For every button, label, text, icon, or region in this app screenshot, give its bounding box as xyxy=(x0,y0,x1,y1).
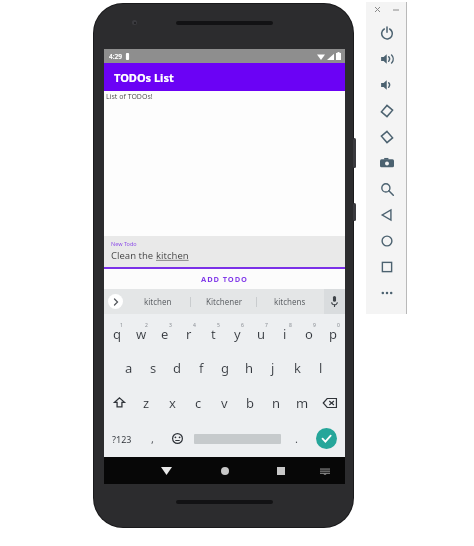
button[interactable]: Power xyxy=(367,20,407,46)
button[interactable]: Voice input xyxy=(324,289,345,314)
staticText: 9 xyxy=(313,322,316,329)
button[interactable]: s xyxy=(141,350,165,385)
staticText: 2 xyxy=(145,322,148,329)
staticText: j xyxy=(271,359,275,377)
button[interactable]: g xyxy=(213,350,237,385)
staticText: TODOs List xyxy=(114,70,174,85)
staticText: Kitchener xyxy=(206,296,242,307)
staticText: b xyxy=(246,394,254,412)
staticText: y xyxy=(234,325,241,343)
staticText: g xyxy=(221,359,229,377)
button[interactable]: Recent apps xyxy=(271,461,291,481)
button[interactable]: Done xyxy=(307,420,345,457)
button[interactable]: kitchen xyxy=(126,289,190,314)
button[interactable]: b xyxy=(237,385,263,420)
staticText: a xyxy=(125,359,133,377)
button[interactable]: 6 xyxy=(225,314,249,350)
button[interactable]: f xyxy=(189,350,213,385)
button[interactable]: Close xyxy=(372,4,383,15)
button[interactable]: v xyxy=(211,385,237,420)
button[interactable]: 1 xyxy=(104,314,129,350)
button[interactable]: x xyxy=(159,385,185,420)
button[interactable]: l xyxy=(309,350,333,385)
staticText: 4:29 xyxy=(109,52,122,61)
button[interactable]: Shift xyxy=(104,385,134,420)
button[interactable]: 2 xyxy=(129,314,153,350)
button[interactable]: New Todo xyxy=(104,236,345,269)
button[interactable]: Home xyxy=(215,461,235,481)
staticText: u xyxy=(257,325,266,343)
button[interactable]: Kitchener xyxy=(191,289,256,314)
staticText: kitchen xyxy=(156,249,189,262)
button[interactable]: 8 xyxy=(273,314,297,350)
staticText: h xyxy=(245,359,254,377)
staticText: s xyxy=(150,359,157,377)
button[interactable]: Emoji xyxy=(164,420,190,457)
staticText: 3 xyxy=(169,322,172,329)
staticText: . xyxy=(295,431,298,446)
staticText: k xyxy=(294,359,301,377)
staticText: e xyxy=(161,325,169,343)
staticText: l xyxy=(319,359,323,377)
staticText: p xyxy=(329,325,337,343)
button[interactable]: Home xyxy=(367,228,407,254)
staticText: ADD TODO xyxy=(201,274,248,284)
staticText: 8 xyxy=(289,322,292,329)
button[interactable]: j xyxy=(261,350,285,385)
button[interactable]: 5 xyxy=(201,314,225,350)
staticText: kitchen xyxy=(144,296,172,307)
button[interactable]: m xyxy=(289,385,315,420)
staticText: List of TODOs! xyxy=(106,92,153,102)
button[interactable]: Backspace xyxy=(315,385,345,420)
button[interactable]: h xyxy=(237,350,261,385)
button[interactable]: Space xyxy=(190,420,285,457)
button[interactable]: More xyxy=(367,280,407,306)
staticText: r xyxy=(186,325,192,343)
staticText: i xyxy=(283,325,287,343)
staticText: f xyxy=(199,359,204,377)
button[interactable]: kitchens xyxy=(257,289,322,314)
button[interactable]: a xyxy=(116,350,141,385)
button[interactable]: Rotate left xyxy=(367,98,407,124)
button[interactable]: 7 xyxy=(249,314,273,350)
button[interactable]: ?123 xyxy=(104,420,140,457)
button[interactable]: d xyxy=(165,350,189,385)
button[interactable]: 0 xyxy=(321,314,345,350)
button[interactable]: , xyxy=(140,420,164,457)
button[interactable]: Overview xyxy=(367,254,407,280)
button[interactable]: Screenshot xyxy=(367,150,407,176)
button[interactable]: Rotate right xyxy=(367,124,407,150)
button[interactable]: Expand suggestions xyxy=(108,294,123,309)
staticText: d xyxy=(173,359,181,377)
staticText: z xyxy=(143,394,150,412)
staticText: 6 xyxy=(241,322,244,329)
button[interactable]: Zoom xyxy=(367,176,407,202)
button[interactable]: Switch keyboard xyxy=(317,463,333,479)
button[interactable]: k xyxy=(285,350,309,385)
staticText: n xyxy=(272,394,281,412)
button[interactable]: 4 xyxy=(177,314,201,350)
staticText: m xyxy=(296,394,309,412)
staticText: kitchens xyxy=(274,296,306,307)
button[interactable]: Back xyxy=(156,461,176,481)
button[interactable]: 3 xyxy=(153,314,177,350)
staticText: o xyxy=(305,325,313,343)
button[interactable]: z xyxy=(134,385,159,420)
button[interactable]: Back xyxy=(367,202,407,228)
button[interactable]: Volume down xyxy=(367,72,407,98)
staticText: x xyxy=(169,394,176,412)
button[interactable]: . xyxy=(285,420,307,457)
button[interactable]: Volume up xyxy=(367,46,407,72)
staticText: 0 xyxy=(337,322,340,329)
button[interactable]: ADD TODO xyxy=(104,269,345,289)
staticText: c xyxy=(195,394,202,412)
staticText: t xyxy=(211,325,216,343)
staticText: 5 xyxy=(217,322,220,329)
staticText: 1 xyxy=(120,322,123,329)
staticText: New Todo xyxy=(111,240,137,247)
staticText: v xyxy=(221,394,228,412)
button[interactable]: n xyxy=(263,385,289,420)
button[interactable]: c xyxy=(185,385,211,420)
button[interactable]: 9 xyxy=(297,314,321,350)
button[interactable]: Minimize xyxy=(390,4,401,15)
